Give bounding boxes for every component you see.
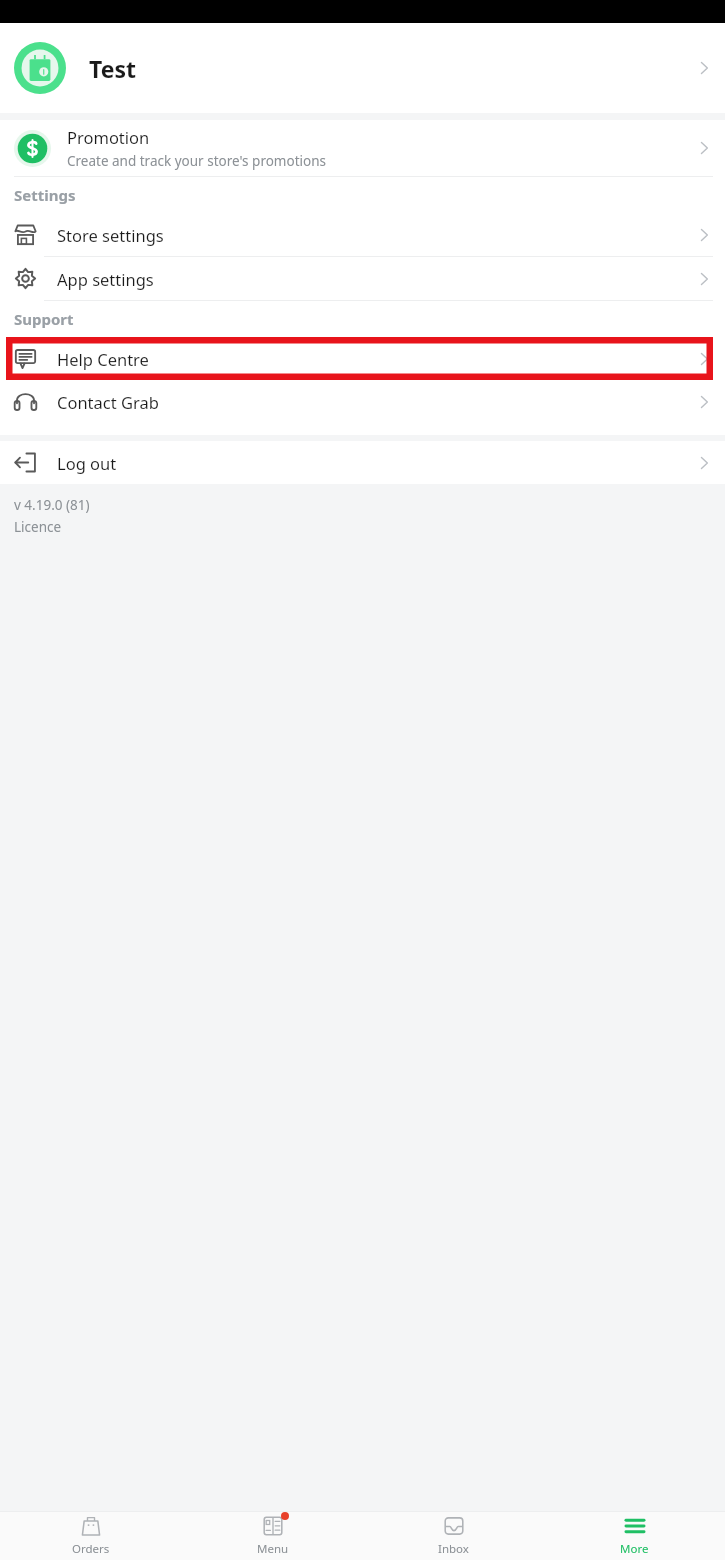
button[interactable]: More xyxy=(544,1512,725,1560)
button[interactable]: Help Centre xyxy=(0,337,725,380)
staticText: Test xyxy=(89,53,136,84)
staticText: Menu xyxy=(257,1541,289,1557)
staticText: App settings xyxy=(57,268,154,290)
button[interactable]: Log out xyxy=(0,441,725,484)
staticText: More xyxy=(620,1541,649,1557)
staticText: Promotion xyxy=(67,126,150,148)
staticText: Create and track your store's promotions xyxy=(67,152,326,170)
staticText: Log out xyxy=(57,452,117,474)
staticText: Support xyxy=(14,309,74,329)
button[interactable]: Promotion xyxy=(0,120,725,176)
button[interactable]: Orders xyxy=(0,1512,182,1560)
staticText: Contact Grab xyxy=(57,391,159,413)
staticText: v 4.19.0 (81) xyxy=(14,496,90,514)
button[interactable]: Menu xyxy=(182,1512,363,1560)
button[interactable]: Store settings xyxy=(0,213,725,256)
button[interactable]: Contact Grab xyxy=(0,380,725,423)
staticText: Inbox xyxy=(438,1541,469,1557)
staticText: Store settings xyxy=(57,224,164,246)
button[interactable]: Test xyxy=(0,23,725,113)
staticText: Orders xyxy=(72,1541,110,1557)
staticText: Settings xyxy=(14,185,76,205)
staticText: Help Centre xyxy=(57,348,149,370)
button[interactable]: App settings xyxy=(0,257,725,300)
staticText: Licence xyxy=(14,518,62,536)
button[interactable]: Inbox xyxy=(363,1512,544,1560)
